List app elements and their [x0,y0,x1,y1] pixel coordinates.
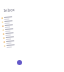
button[interactable] [1,38,33,44]
button[interactable] [0,22,32,28]
button[interactable] [1,34,33,40]
button[interactable] [0,30,33,36]
button[interactable] [0,26,32,32]
button[interactable] [1,41,34,48]
button[interactable] [0,18,32,24]
button[interactable]: Compose [17,60,22,65]
button[interactable] [0,14,31,20]
staticText: Inbox [3,7,16,13]
